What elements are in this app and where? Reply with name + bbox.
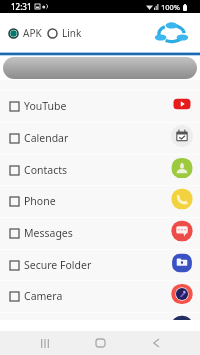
button[interactable]: Contacts xyxy=(0,154,200,186)
button[interactable]: Phone xyxy=(0,185,200,217)
button[interactable]: Chrome xyxy=(0,312,200,320)
staticText: 100% xyxy=(161,2,181,12)
button[interactable]: Search xyxy=(3,57,197,79)
staticText: YouTube xyxy=(24,99,67,113)
button[interactable]: Messages xyxy=(0,217,200,249)
staticText: Phone xyxy=(24,194,56,208)
button[interactable]: APK xyxy=(7,23,43,43)
staticText: Calendar xyxy=(24,131,69,145)
button[interactable]: Share xyxy=(154,21,189,45)
button[interactable]: Calendar xyxy=(0,122,200,154)
staticText: Contacts xyxy=(24,163,68,177)
button[interactable]: Link xyxy=(46,23,83,43)
button[interactable]: YouTube xyxy=(0,90,200,122)
staticText: Messages xyxy=(24,226,73,240)
staticText: Link xyxy=(62,26,82,40)
staticText: APK xyxy=(23,26,42,40)
staticText: 12:31 xyxy=(11,1,32,12)
button[interactable]: Back xyxy=(136,331,176,355)
staticText: Secure Folder xyxy=(24,258,92,272)
button[interactable]: Recents xyxy=(25,331,65,355)
button[interactable]: Camera xyxy=(0,280,200,312)
button[interactable]: Home xyxy=(80,331,120,355)
staticText: Camera xyxy=(24,289,63,303)
button[interactable]: Secure Folder xyxy=(0,249,200,281)
